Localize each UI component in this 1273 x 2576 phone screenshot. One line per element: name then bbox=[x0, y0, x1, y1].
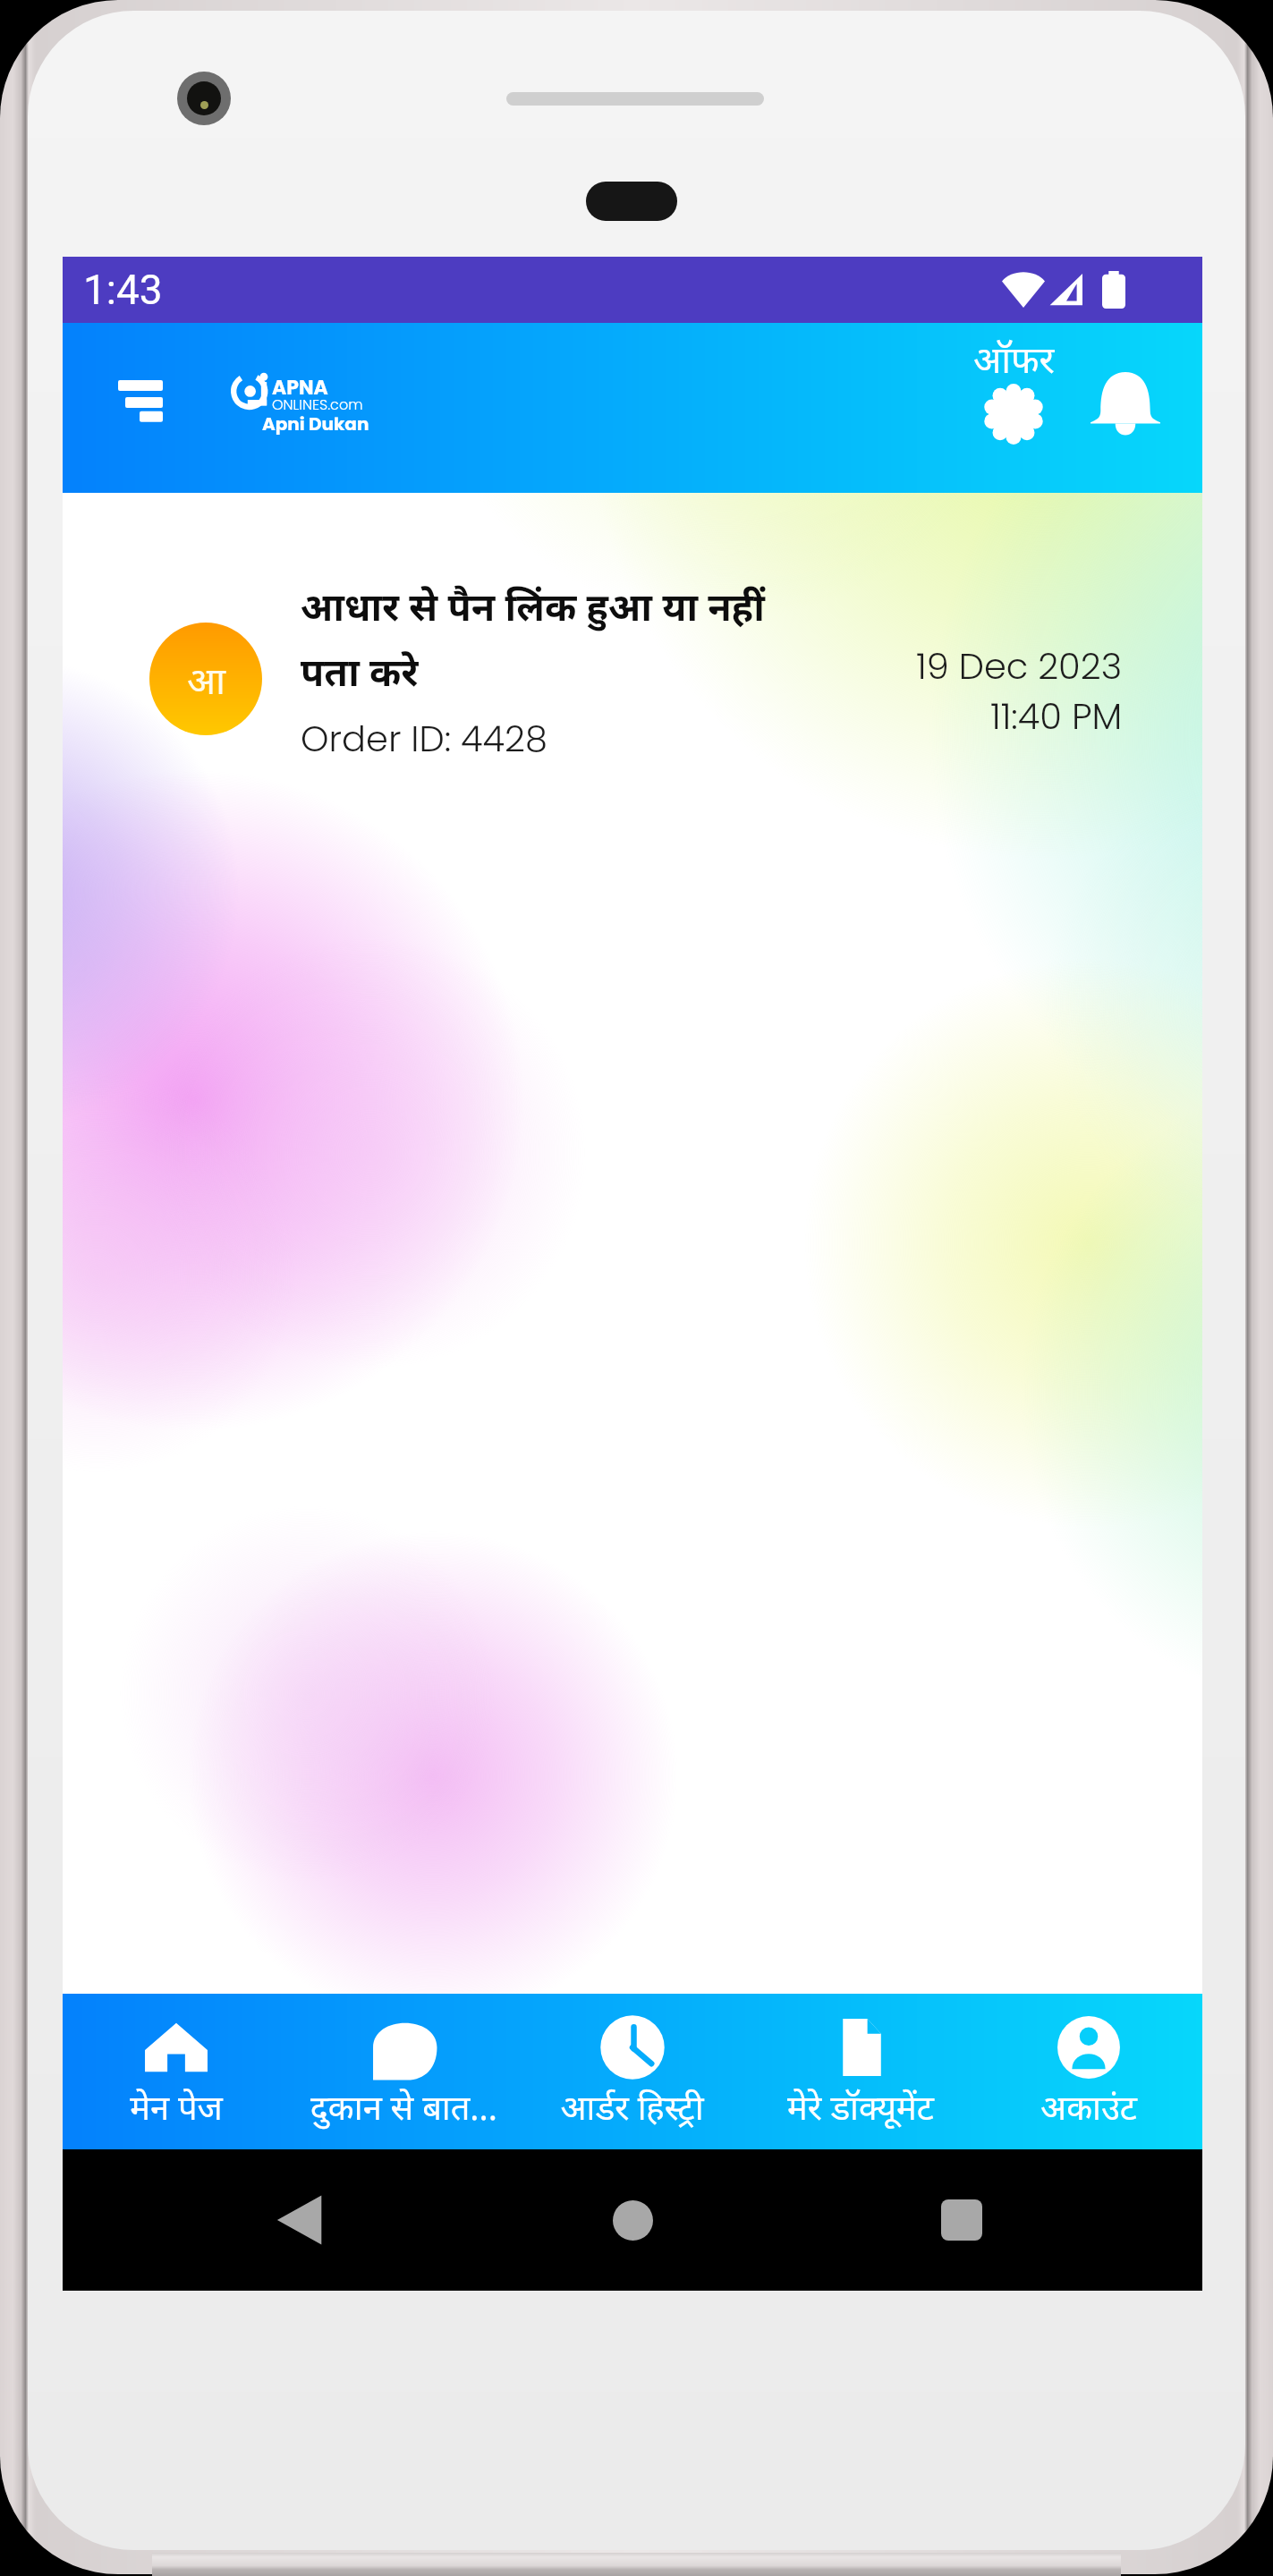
staticText: Apni Dukan bbox=[262, 411, 369, 436]
button[interactable]: Notifications bbox=[1076, 359, 1175, 457]
button[interactable]: ऑफर bbox=[933, 334, 1094, 445]
button[interactable]: आर्डर हिस्ट्री bbox=[518, 1994, 746, 2149]
staticText: Order ID: 4428 bbox=[301, 714, 547, 764]
staticText: मेरे डॉक्यूमेंट bbox=[787, 2083, 934, 2130]
button[interactable]: आ bbox=[63, 493, 1202, 761]
staticText: APNA bbox=[272, 374, 328, 402]
button[interactable]: मेन पेज bbox=[63, 1994, 290, 2149]
staticText: अकाउंट bbox=[1040, 2083, 1137, 2130]
button[interactable]: Home bbox=[570, 2149, 695, 2291]
button[interactable]: Back bbox=[238, 2149, 363, 2291]
button[interactable]: Recents bbox=[899, 2149, 1024, 2291]
staticText: 19 Dec 2023 bbox=[916, 641, 1123, 691]
button[interactable]: दुकान से बात... bbox=[290, 1994, 518, 2149]
button[interactable]: अकाउंट bbox=[974, 1994, 1202, 2149]
staticText: 11:40 PM bbox=[990, 691, 1123, 741]
staticText: ऑफर bbox=[973, 334, 1055, 384]
staticText: आर्डर हिस्ट्री bbox=[560, 2083, 704, 2130]
staticText: मेन पेज bbox=[130, 2083, 223, 2130]
staticText: दुकान से बात... bbox=[310, 2083, 497, 2130]
button[interactable]: मेरे डॉक्यूमेंट bbox=[746, 1994, 974, 2149]
staticText: आ bbox=[187, 654, 225, 705]
staticText: ONLINES.com bbox=[272, 394, 363, 414]
staticText: आधार से पैन लिंक हुआ या नहीं पता करे bbox=[301, 580, 766, 698]
button[interactable]: Menu bbox=[100, 362, 181, 452]
staticText: 1:43 bbox=[83, 266, 163, 314]
